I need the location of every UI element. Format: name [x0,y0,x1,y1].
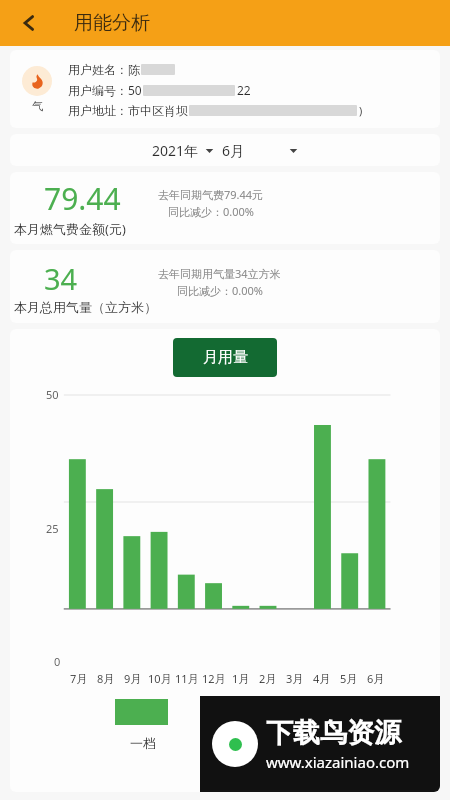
staticText: 2月 [259,671,277,686]
staticText: www.xiazainiao.com [266,752,410,772]
staticText: 7月 [70,671,88,686]
staticText: 去年同期用气量34立方米 [158,266,281,281]
staticText: 去年同期气费79.44元 [158,187,264,202]
button[interactable]: 6月 [222,141,298,160]
staticText: 陈 [128,62,140,77]
staticText: ) [359,103,363,118]
staticText: 6月 [367,671,385,686]
staticText: 22 [237,82,251,98]
staticText: 本月总用气量（立方米） [14,299,157,315]
staticText: 10月 [148,671,172,686]
staticText: 4月 [313,671,331,686]
staticText: 25 [46,521,59,536]
staticText: 下载鸟资源 [266,716,401,750]
staticText: 0 [54,654,61,669]
staticText: 3月 [286,671,304,686]
staticText: 用户编号： [68,83,128,98]
button[interactable]: 2021年 [152,141,214,160]
staticText: 79.44 [44,178,121,219]
button[interactable]: Back [8,2,50,44]
staticText: 34 [44,259,78,298]
staticText: 市中区肖坝 [128,103,188,118]
staticText: 50 [128,82,142,98]
staticText: 气 [32,99,43,113]
staticText: 6月 [222,141,245,160]
button[interactable]: 月用量 [173,338,277,377]
staticText: 本月燃气费金额(元) [14,220,126,238]
staticText: 50 [46,387,59,402]
staticText: 同比减少：0.00% [177,283,263,298]
staticText: 用能分析 [74,11,150,35]
staticText: 用户地址： [68,103,128,118]
staticText: 月用量 [203,348,248,367]
staticText: 8月 [97,671,115,686]
staticText: 9月 [124,671,142,686]
staticText: 1月 [232,671,250,686]
staticText: 用户姓名： [68,62,128,77]
staticText: 12月 [202,671,226,686]
staticText: 5月 [340,671,358,686]
staticText: 一档 [130,735,156,751]
staticText: 2021年 [152,141,199,160]
staticText: 同比减少：0.00% [168,204,254,219]
staticText: 11月 [175,671,199,686]
